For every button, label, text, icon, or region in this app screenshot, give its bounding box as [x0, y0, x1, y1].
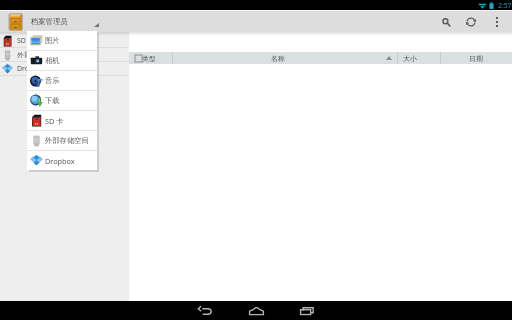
button[interactable]: Home	[236, 301, 276, 320]
staticText: 类型	[142, 54, 156, 63]
button[interactable]: Recent apps	[287, 301, 327, 320]
button[interactable]: 档案管理员	[8, 11, 99, 32]
button[interactable]: 大小	[398, 52, 440, 64]
staticText: Dropbox	[45, 156, 75, 166]
button[interactable]: 相机	[27, 51, 97, 70]
button[interactable]: Refresh	[461, 12, 481, 32]
button[interactable]: Dropbox	[27, 151, 97, 170]
button[interactable]: 类型	[129, 52, 172, 64]
button[interactable]: 外部存储空间	[0, 48, 129, 61]
button[interactable]: Dropbox	[0, 62, 129, 75]
staticText: 大小	[403, 54, 417, 63]
button[interactable]: 图片	[27, 31, 97, 50]
staticText: 下载	[45, 96, 60, 105]
staticText: 相机	[45, 56, 60, 65]
staticText: SD 卡	[45, 116, 64, 126]
button[interactable]: 外部存储空间	[27, 131, 97, 150]
button[interactable]: Back	[185, 301, 225, 320]
staticText: 名称	[271, 54, 285, 63]
button[interactable]: SD 卡	[27, 111, 97, 130]
button[interactable]: Search	[436, 12, 456, 32]
button[interactable]: More options	[487, 12, 507, 32]
button[interactable]: 日期	[441, 52, 512, 64]
staticText: SD 卡	[17, 36, 35, 46]
button[interactable]: SD 卡	[0, 34, 129, 47]
staticText: 档案管理员	[31, 17, 68, 26]
staticText: 音乐	[45, 76, 60, 85]
staticText: 日期	[469, 54, 483, 63]
staticText: 外部存储空间	[45, 136, 89, 145]
button[interactable]: 名称	[173, 52, 397, 64]
staticText: 2:57	[498, 1, 512, 10]
button[interactable]: 音乐	[27, 71, 97, 90]
staticText: Dropbox	[17, 64, 46, 74]
staticText: 外部存储空间	[17, 50, 59, 59]
button[interactable]: 下载	[27, 91, 97, 110]
staticText: 图片	[45, 36, 60, 45]
